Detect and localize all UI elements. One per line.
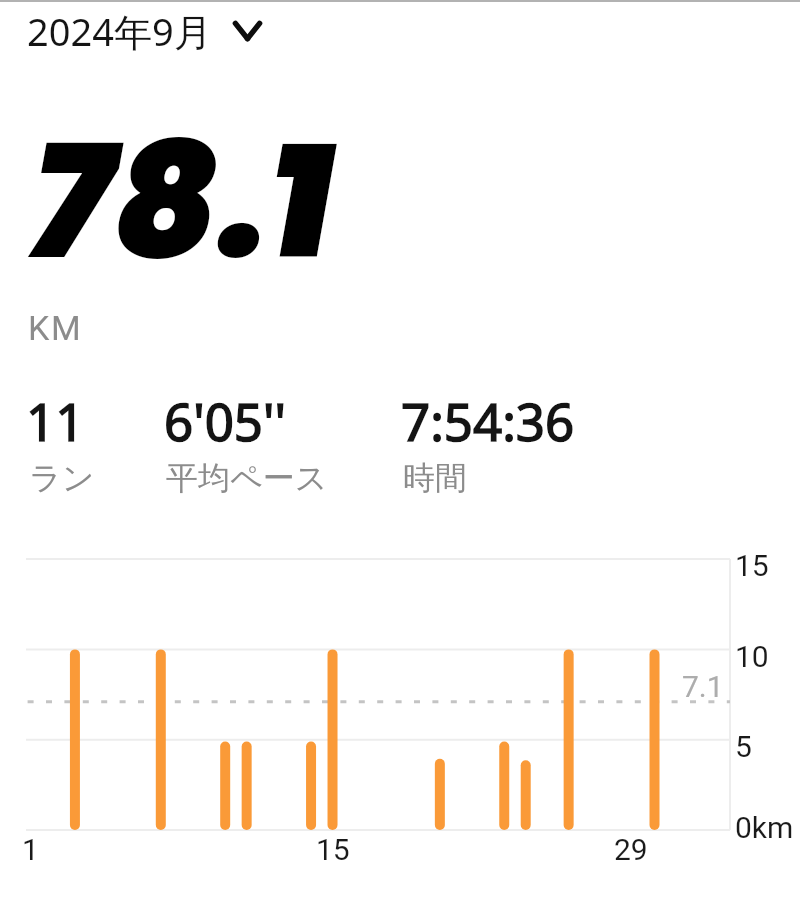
staticText: 平均ペース — [166, 458, 328, 498]
button[interactable]: 6'05'' — [160, 378, 335, 494]
button[interactable]: 7:54:36 — [397, 378, 582, 494]
button[interactable]: 2024年9月 — [21, 1, 269, 61]
staticText: KM — [28, 308, 83, 348]
staticText: 0km — [735, 810, 794, 845]
staticText: ラン — [29, 458, 95, 498]
other: Change month — [232, 20, 263, 42]
staticText: 11 — [26, 386, 85, 455]
button[interactable]: 11 — [22, 378, 102, 494]
staticText: 7.1 — [682, 669, 724, 704]
staticText: 7:54:36 — [401, 386, 575, 455]
staticText: 1 — [22, 832, 39, 867]
staticText: 15 — [316, 832, 350, 867]
staticText: 78.1 — [31, 89, 333, 313]
staticText: 10 — [735, 639, 769, 674]
staticText: 15 — [735, 548, 769, 583]
staticText: 5 — [735, 729, 752, 764]
staticText: 29 — [614, 832, 648, 867]
staticText: 時間 — [403, 458, 467, 498]
staticText: 2024年9月 — [27, 5, 212, 57]
staticText: 6'05'' — [164, 386, 286, 455]
